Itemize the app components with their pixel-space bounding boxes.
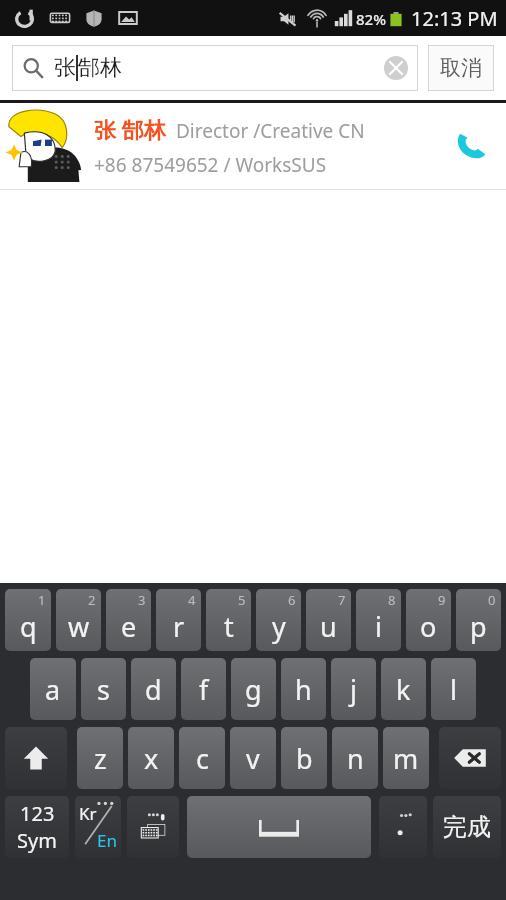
button[interactable]: b bbox=[281, 727, 327, 789]
button[interactable]: Period bbox=[379, 796, 427, 858]
staticText: 取消 bbox=[440, 55, 482, 81]
button[interactable]: a bbox=[30, 658, 76, 720]
staticText: 5 bbox=[238, 591, 246, 609]
button[interactable]: k bbox=[381, 658, 426, 720]
button[interactable]: n bbox=[332, 727, 378, 789]
staticText: 123 bbox=[20, 800, 55, 827]
button[interactable]: 3 bbox=[106, 589, 151, 651]
button[interactable]: Backspace bbox=[439, 727, 501, 789]
button[interactable]: Shift bbox=[5, 727, 67, 789]
button[interactable]: 8 bbox=[356, 589, 401, 651]
staticText: g bbox=[245, 671, 262, 708]
button[interactable]: 1 bbox=[5, 589, 51, 651]
button[interactable]: 4 bbox=[156, 589, 201, 651]
staticText: m bbox=[393, 740, 419, 777]
staticText: k bbox=[396, 671, 411, 708]
staticText: Director /Creative CN bbox=[176, 118, 365, 144]
staticText: 完成 bbox=[443, 812, 491, 842]
staticText: 9 bbox=[438, 591, 446, 609]
button[interactable]: v bbox=[230, 727, 276, 789]
staticText: 张 bbox=[54, 54, 76, 82]
staticText: 1 bbox=[38, 591, 46, 609]
button[interactable]: j bbox=[331, 658, 376, 720]
staticText: 3 bbox=[138, 591, 146, 609]
staticText: n bbox=[347, 740, 364, 777]
staticText: p bbox=[470, 608, 487, 645]
button[interactable]: g bbox=[231, 658, 276, 720]
button[interactable]: 6 bbox=[256, 589, 301, 651]
button[interactable]: Clear search bbox=[384, 56, 408, 80]
staticText: u bbox=[320, 608, 337, 645]
button[interactable]: z bbox=[77, 727, 123, 789]
staticText: a bbox=[45, 671, 61, 708]
button[interactable]: 完成 bbox=[433, 796, 501, 858]
button[interactable]: d bbox=[131, 658, 176, 720]
button[interactable]: 9 bbox=[406, 589, 451, 651]
staticText: v bbox=[246, 740, 260, 777]
staticText: i bbox=[375, 608, 382, 645]
button[interactable]: x bbox=[128, 727, 174, 789]
staticText: Kr bbox=[79, 802, 97, 825]
staticText: 12:13 PM bbox=[411, 5, 498, 32]
button[interactable]: 5 bbox=[206, 589, 251, 651]
staticText: e bbox=[121, 608, 137, 645]
button[interactable]: s bbox=[81, 658, 126, 720]
staticText: t bbox=[224, 608, 234, 645]
staticText: 8 bbox=[388, 591, 396, 609]
staticText: 4 bbox=[188, 591, 196, 609]
button[interactable]: l bbox=[431, 658, 476, 720]
staticText: b bbox=[296, 740, 313, 777]
staticText: o bbox=[420, 608, 437, 645]
staticText: y bbox=[272, 608, 286, 645]
staticText: 6 bbox=[288, 591, 296, 609]
button[interactable]: h bbox=[281, 658, 326, 720]
button[interactable]: Kr bbox=[75, 796, 121, 858]
staticText: h bbox=[295, 671, 312, 708]
button[interactable]: c bbox=[179, 727, 225, 789]
staticText: r bbox=[173, 608, 185, 645]
button[interactable]: 7 bbox=[306, 589, 351, 651]
staticText: 82% bbox=[356, 9, 386, 29]
staticText: c bbox=[196, 740, 209, 777]
button[interactable]: 张 bbox=[12, 45, 418, 91]
staticText: z bbox=[94, 740, 107, 777]
staticText: +86 87549652 / WorksSUS bbox=[94, 152, 327, 178]
button[interactable]: Space bbox=[187, 796, 371, 858]
staticText: 2 bbox=[88, 591, 96, 609]
button[interactable]: 123 bbox=[5, 796, 69, 858]
staticText: l bbox=[450, 671, 457, 708]
staticText: 郜林 bbox=[78, 54, 122, 82]
button[interactable]: m bbox=[383, 727, 429, 789]
staticText: j bbox=[350, 671, 357, 708]
button[interactable]: 0 bbox=[456, 589, 501, 651]
staticText: f bbox=[199, 671, 209, 708]
staticText: s bbox=[97, 671, 110, 708]
staticText: En bbox=[97, 829, 117, 852]
staticText: q bbox=[20, 608, 37, 645]
button[interactable]: 取消 bbox=[428, 45, 494, 91]
button[interactable]: f bbox=[181, 658, 226, 720]
staticText: w bbox=[68, 608, 90, 645]
staticText: Sym bbox=[17, 827, 57, 854]
staticText: d bbox=[145, 671, 162, 708]
button[interactable]: Call bbox=[436, 103, 506, 189]
staticText: x bbox=[144, 740, 159, 777]
button[interactable]: 张 郜林 bbox=[0, 103, 506, 189]
button[interactable]: 2 bbox=[56, 589, 101, 651]
button[interactable]: Switch keyboard bbox=[127, 796, 179, 858]
staticText: 0 bbox=[488, 591, 496, 609]
staticText: 7 bbox=[338, 591, 346, 609]
staticText: 张 郜林 bbox=[94, 114, 166, 144]
